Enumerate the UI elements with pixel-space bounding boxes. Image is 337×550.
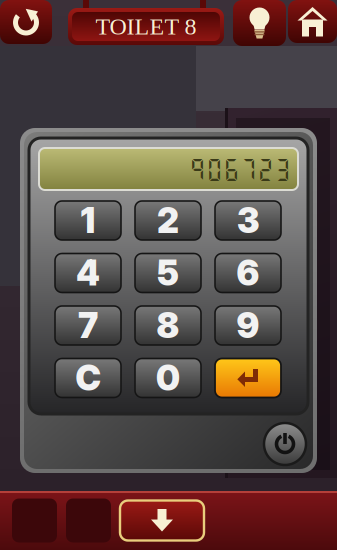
staticText: 906723 [189, 155, 291, 183]
staticText: 5 [157, 252, 179, 294]
button[interactable]: Home [288, 0, 337, 43]
staticText: C [75, 357, 100, 399]
button[interactable]: 6 [215, 253, 281, 292]
button[interactable]: Power [264, 423, 306, 465]
button[interactable]: 5 [135, 253, 201, 292]
button[interactable]: 2 [135, 201, 201, 240]
button[interactable]: 4 [55, 253, 121, 292]
button[interactable]: 7 [55, 306, 121, 345]
staticText: 1 [80, 199, 95, 241]
staticText: 9 [236, 304, 259, 346]
button[interactable]: 3 [215, 201, 281, 240]
button[interactable]: 0 [135, 358, 201, 397]
staticText: 3 [237, 199, 259, 241]
button[interactable]: Empty inventory slot [12, 498, 57, 542]
button[interactable]: Collect item [120, 500, 204, 540]
staticText: 7 [78, 304, 98, 346]
staticText: TOILET 8 [95, 13, 196, 40]
staticText: 6 [236, 252, 259, 294]
button[interactable]: 1 [55, 201, 121, 240]
staticText: 0 [156, 357, 180, 399]
button[interactable]: Restart level [0, 0, 52, 44]
button[interactable]: 9 [215, 306, 281, 345]
button[interactable]: Enter code [215, 358, 281, 397]
button[interactable]: C [55, 358, 121, 397]
staticText: 4 [76, 252, 100, 294]
staticText: 8 [156, 304, 179, 346]
staticText: 2 [157, 199, 179, 241]
button[interactable]: 8 [135, 306, 201, 345]
button[interactable]: Hint [233, 0, 286, 46]
button[interactable]: TOILET 8 [68, 8, 224, 45]
button[interactable]: Empty inventory slot [66, 498, 111, 542]
